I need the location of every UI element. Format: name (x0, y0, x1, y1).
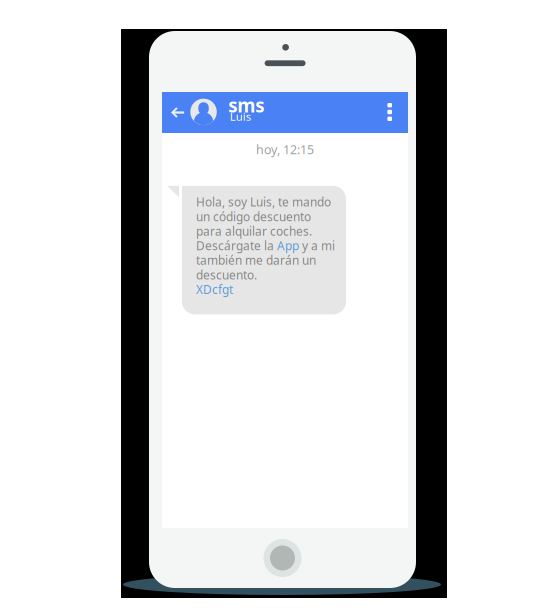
button[interactable]: sms (190, 98, 293, 125)
staticText: sms (228, 93, 264, 118)
staticText: Hola, soy Luis, te mando un código descu… (196, 194, 335, 297)
staticText: Luis (230, 109, 251, 124)
staticText: hoy, 12:15 (256, 141, 314, 158)
button[interactable]: More options (381, 101, 399, 123)
button[interactable]: Back (166, 101, 188, 123)
